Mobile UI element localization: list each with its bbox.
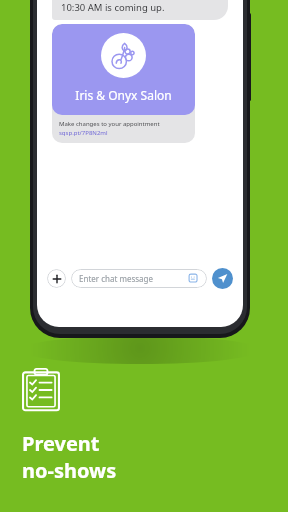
button[interactable]: Iris & Onyx Salon logo xyxy=(52,24,195,143)
other: Iris & Onyx Salon logo xyxy=(101,33,146,78)
button[interactable]: Send xyxy=(212,268,233,289)
staticText: Iris & Onyx Salon xyxy=(75,87,172,103)
button[interactable]: Iris & Onyx Salon on Tue, Nov 5 at 10:30… xyxy=(52,0,228,20)
staticText: Iris & Onyx Salon on Tue, Nov 5 at 10:30… xyxy=(61,0,219,14)
staticText: sqsp.pt/7P8N2ml xyxy=(59,129,108,137)
button[interactable]: Add attachment xyxy=(47,269,66,288)
staticText: Make changes to your appointment xyxy=(59,120,160,128)
other: Stickers xyxy=(188,273,199,284)
staticText: Prevent xyxy=(22,430,100,457)
button[interactable]: Enter chat message xyxy=(71,269,207,288)
staticText: no-shows xyxy=(22,457,117,484)
staticText: Enter chat message xyxy=(79,273,188,284)
